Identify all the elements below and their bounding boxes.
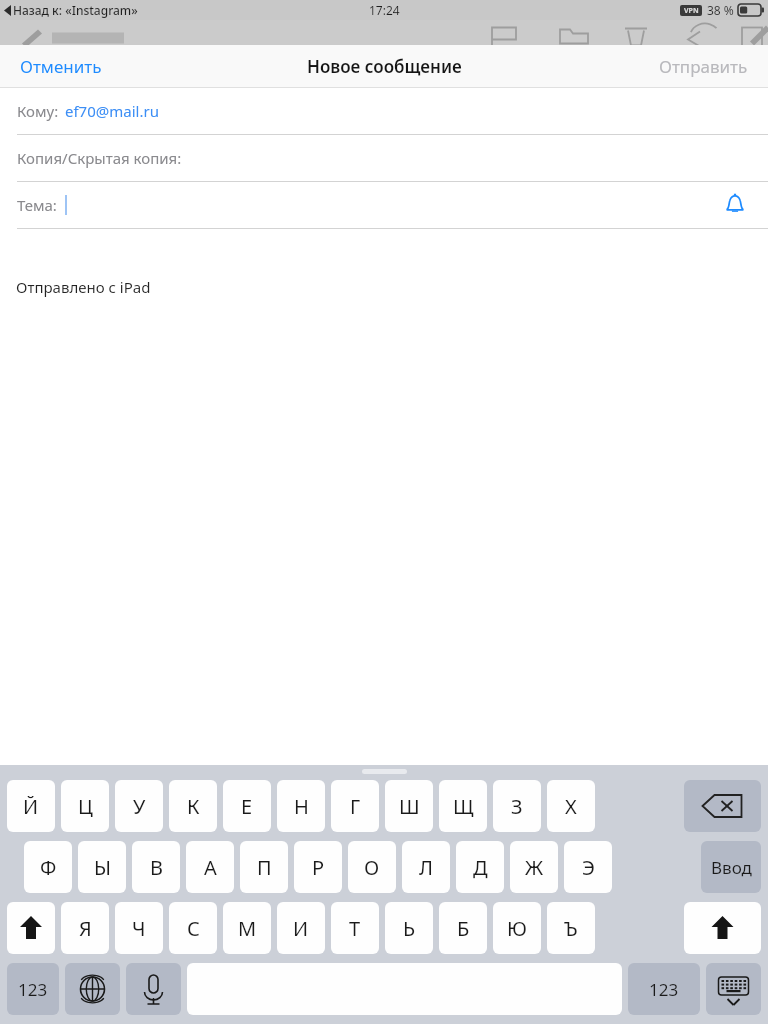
staticText: М — [238, 915, 257, 942]
staticText: 123 — [18, 978, 48, 1001]
staticText: Я — [79, 915, 92, 942]
button[interactable]: Диктовка — [126, 963, 181, 1015]
button[interactable]: А — [186, 841, 234, 893]
button[interactable]: Б — [439, 902, 487, 954]
button[interactable]: Ф — [24, 841, 72, 893]
staticText: Новое сообщение — [307, 55, 462, 78]
staticText: К — [187, 793, 200, 820]
button[interactable]: С — [169, 902, 217, 954]
button[interactable]: Ж — [510, 841, 558, 893]
button[interactable]: Ю — [493, 902, 541, 954]
staticText: Ь — [403, 915, 416, 942]
staticText: 17:24 — [369, 2, 400, 18]
staticText: Тема: — [17, 195, 57, 215]
staticText: Т — [349, 915, 361, 942]
button[interactable]: И — [277, 902, 325, 954]
staticText: 123 — [649, 978, 679, 1001]
staticText: VPN — [684, 6, 699, 16]
button[interactable]: Скрыть клавиатуру — [706, 963, 761, 1015]
staticText: Р — [312, 854, 325, 881]
button[interactable]: Д — [456, 841, 504, 893]
staticText: Кому: — [17, 101, 59, 121]
staticText: Б — [457, 915, 470, 942]
button[interactable]: М — [223, 902, 271, 954]
staticText: Ф — [40, 854, 57, 881]
staticText: 38 % — [707, 2, 734, 18]
button[interactable]: Кому: — [0, 88, 768, 134]
staticText: Г — [350, 793, 361, 820]
staticText: Д — [473, 854, 488, 881]
button[interactable]: Э — [564, 841, 612, 893]
button[interactable]: Н — [277, 780, 325, 832]
staticText: Ш — [399, 793, 420, 820]
staticText: Ц — [78, 793, 93, 820]
button[interactable]: Назад к: «Instagram» — [4, 2, 138, 18]
staticText: Ы — [94, 854, 111, 881]
button[interactable]: Т — [331, 902, 379, 954]
button[interactable]: Й — [7, 780, 55, 832]
staticText: А — [204, 854, 217, 881]
staticText: Назад к: «Instagram» — [13, 2, 138, 18]
staticText: Э — [582, 854, 595, 881]
staticText: Отправлено с iPad — [16, 277, 151, 297]
staticText: Ч — [132, 915, 146, 942]
button[interactable]: Ь — [385, 902, 433, 954]
button[interactable]: Удалить — [684, 780, 761, 832]
button[interactable]: Щ — [439, 780, 487, 832]
staticText: Л — [419, 854, 433, 881]
button[interactable]: Shift — [7, 902, 55, 954]
button[interactable]: Р — [294, 841, 342, 893]
staticText: У — [133, 793, 146, 820]
staticText: Й — [23, 793, 39, 820]
button[interactable]: Ц — [61, 780, 109, 832]
button[interactable]: В — [132, 841, 180, 893]
staticText: Ю — [507, 915, 527, 942]
staticText: Ъ — [564, 915, 578, 942]
button[interactable]: Ввод — [701, 841, 761, 893]
staticText: Н — [294, 793, 309, 820]
staticText: П — [257, 854, 272, 881]
staticText: Щ — [453, 793, 474, 820]
staticText: Х — [565, 793, 577, 820]
button[interactable]: Г — [331, 780, 379, 832]
button[interactable]: Shift — [684, 902, 761, 954]
staticText: Ввод — [711, 856, 752, 879]
button[interactable]: Л — [402, 841, 450, 893]
staticText: Е — [241, 793, 253, 820]
button[interactable]: Копия/Скрытая копия: — [0, 135, 768, 181]
button[interactable]: Отправить — [639, 47, 768, 86]
button[interactable]: Тема: — [0, 182, 768, 228]
button[interactable]: К — [169, 780, 217, 832]
button[interactable]: Уведомления — [724, 193, 768, 217]
button[interactable]: Ш — [385, 780, 433, 832]
button[interactable]: Ы — [78, 841, 126, 893]
staticText: Копия/Скрытая копия: — [17, 148, 182, 168]
staticText: В — [150, 854, 163, 881]
button[interactable]: 123 — [7, 963, 59, 1015]
button[interactable]: У — [115, 780, 163, 832]
staticText: Ж — [525, 854, 544, 881]
staticText: С — [187, 915, 200, 942]
button[interactable]: Сменить язык — [65, 963, 120, 1015]
button[interactable]: Х — [547, 780, 595, 832]
button[interactable]: Ъ — [547, 902, 595, 954]
button[interactable]: П — [240, 841, 288, 893]
staticText: О — [364, 854, 380, 881]
staticText: З — [511, 793, 523, 820]
staticText: И — [293, 915, 309, 942]
staticText: ef70@mail.ru — [65, 101, 159, 121]
staticText: Отправить — [659, 55, 748, 78]
button[interactable]: Е — [223, 780, 271, 832]
button[interactable]: Ч — [115, 902, 163, 954]
staticText: Отменить — [20, 55, 102, 78]
button[interactable]: З — [493, 780, 541, 832]
button[interactable]: 123 — [628, 963, 700, 1015]
button[interactable]: Отменить — [0, 47, 122, 86]
button[interactable]: О — [348, 841, 396, 893]
button[interactable]: Я — [61, 902, 109, 954]
